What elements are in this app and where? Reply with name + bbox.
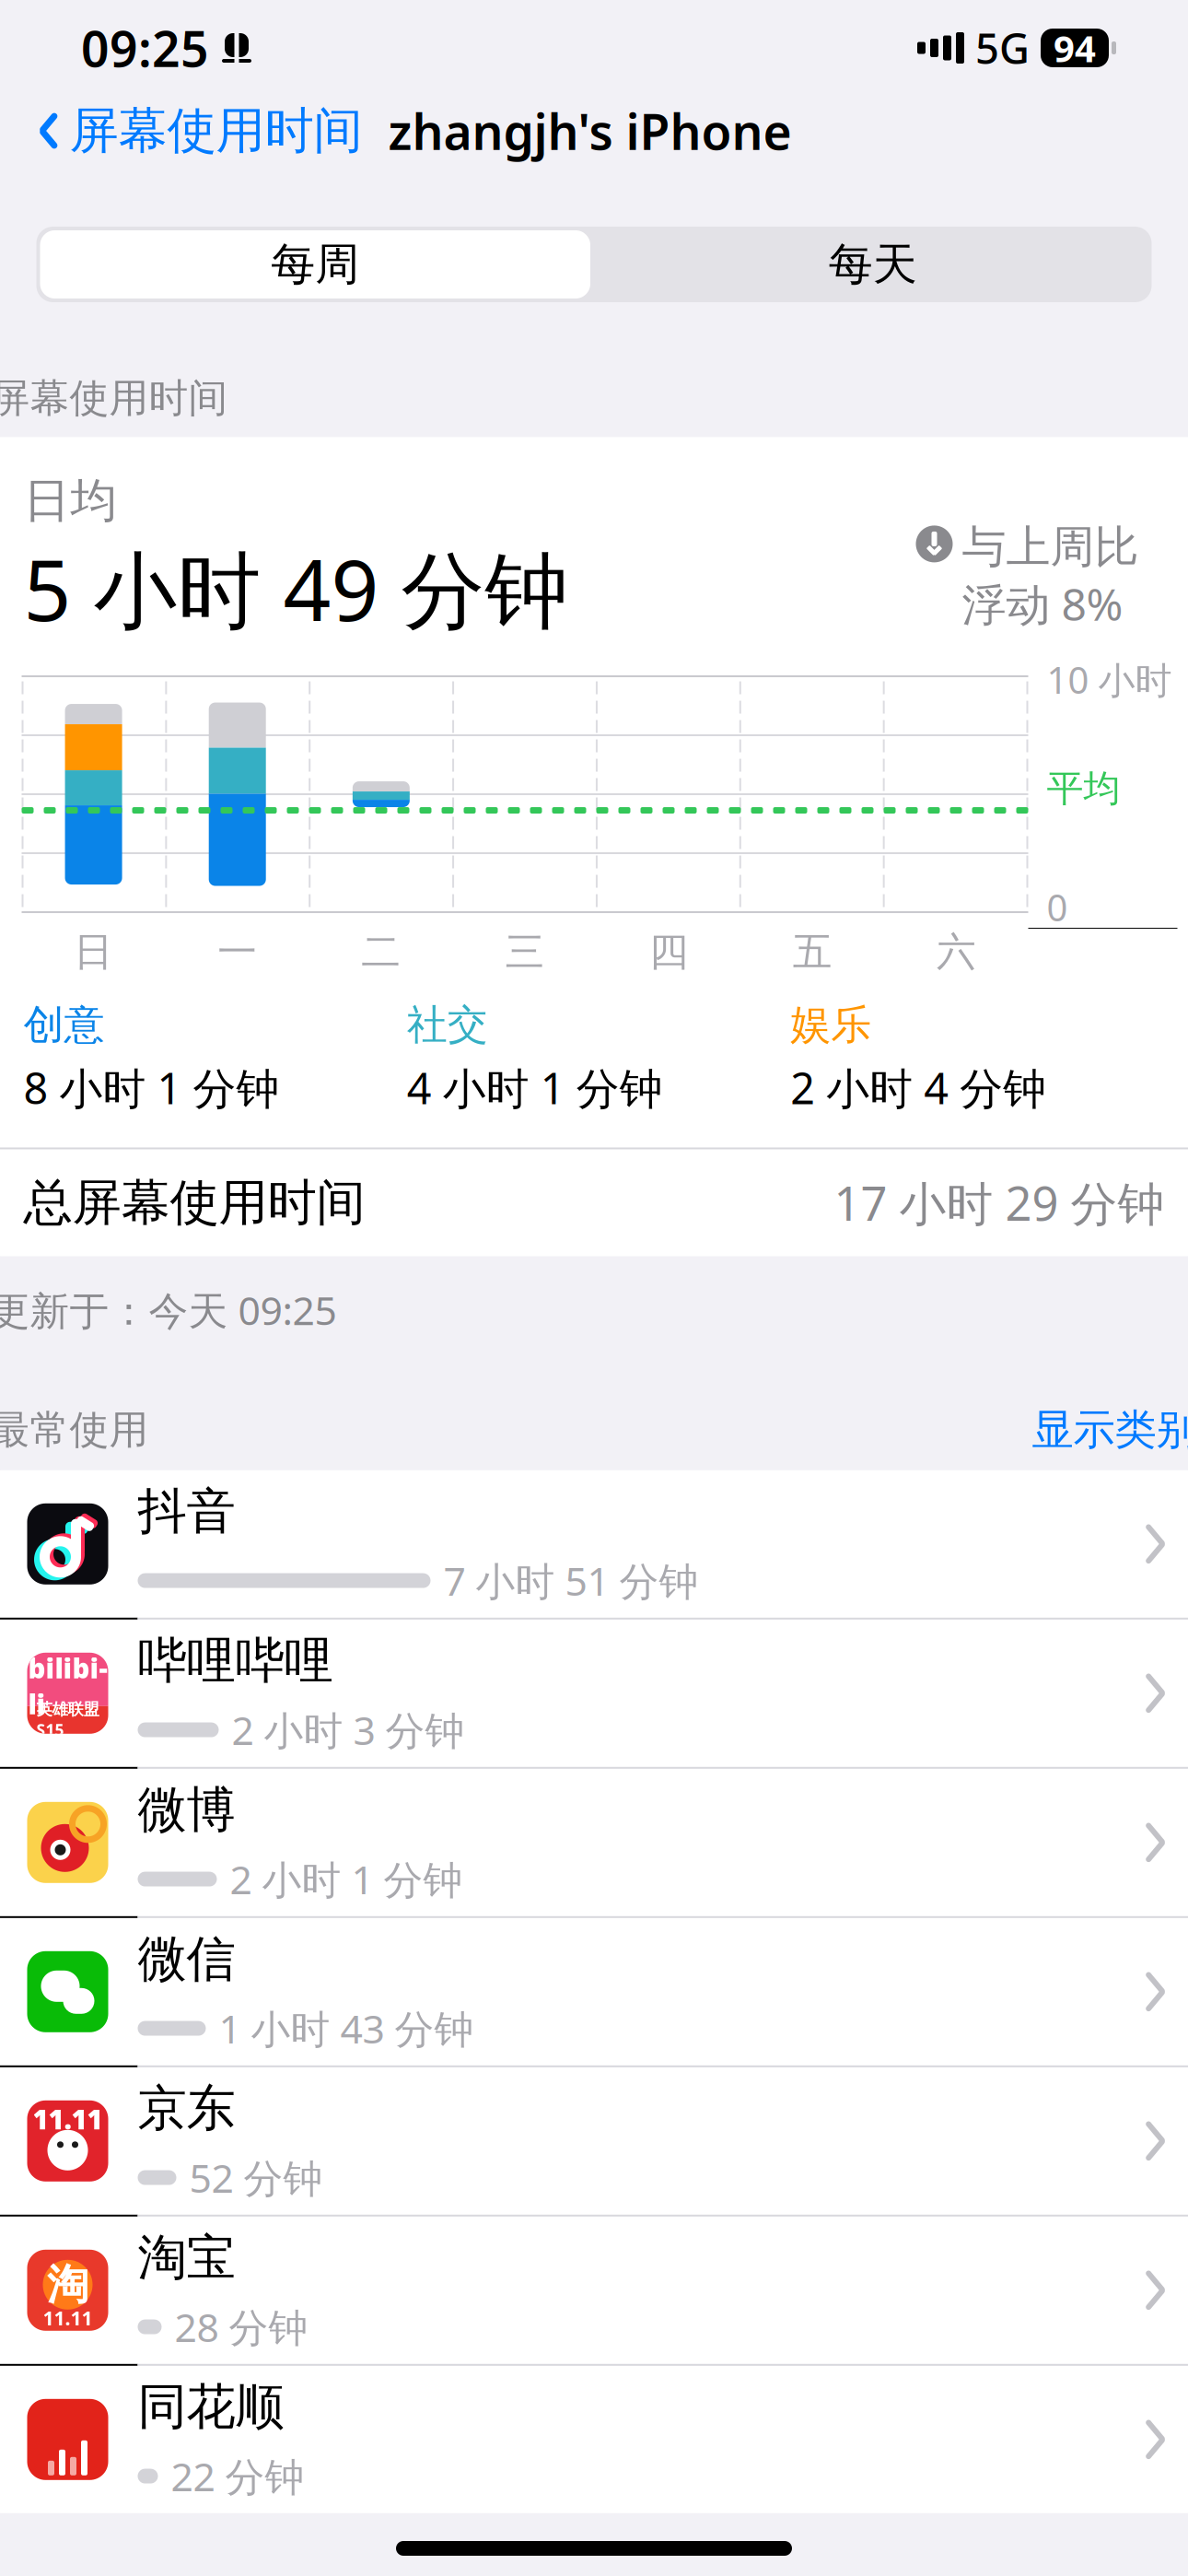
- staticText: 社交: [407, 1000, 488, 1050]
- staticText: 屏幕使用时间: [0, 374, 228, 422]
- button[interactable]: 英雄联盟S15: [0, 1619, 1188, 1769]
- button[interactable]: 11.11: [0, 2067, 1188, 2217]
- staticText: 0: [1047, 883, 1068, 931]
- button[interactable]: 总屏幕使用时间: [0, 1149, 1188, 1256]
- staticText: 六: [936, 928, 976, 976]
- staticText: 显示类别: [1032, 1404, 1188, 1455]
- staticText: 09:25: [81, 15, 209, 81]
- staticText: zhangjh's iPhone: [388, 98, 792, 163]
- staticText: 淘: [47, 2259, 88, 2310]
- staticText: 22 分钟: [171, 2450, 304, 2502]
- staticText: 与上周比浮动 8%: [962, 520, 1139, 633]
- staticText: 5 小时 49 分钟: [23, 533, 569, 644]
- staticText: 2 小时 3 分钟: [232, 1704, 465, 1756]
- staticText: 创意: [23, 1000, 105, 1050]
- staticText: 总屏幕使用时间: [23, 1173, 365, 1233]
- staticText: 抖音: [138, 1481, 235, 1542]
- staticText: 4 小时 1 分钟: [407, 1059, 663, 1116]
- staticText: 2 小时 1 分钟: [230, 1853, 463, 1905]
- staticText: 淘宝: [138, 2227, 235, 2288]
- staticText: 日均: [23, 472, 117, 529]
- staticText: 更新于：今天 09:25: [0, 1284, 337, 1336]
- staticText: 二: [361, 928, 401, 976]
- staticText: 三: [505, 928, 545, 976]
- staticText: 每天: [829, 237, 917, 292]
- staticText: 微博: [138, 1780, 235, 1840]
- staticText: 1 小时 43 分钟: [219, 2002, 474, 2054]
- button[interactable]: 每天: [594, 227, 1152, 302]
- staticText: 28 分钟: [175, 2301, 308, 2353]
- staticText: 5G: [975, 20, 1030, 76]
- button[interactable]: 屏幕使用时间: [33, 88, 368, 174]
- staticText: 一: [218, 928, 257, 976]
- button[interactable]: 淘: [0, 2217, 1188, 2366]
- button[interactable]: 显示类别: [1032, 1404, 1188, 1455]
- staticText: 京东: [138, 2078, 235, 2139]
- staticText: 11.11: [33, 2101, 103, 2137]
- staticText: 同花顺: [138, 2377, 284, 2437]
- staticText: 52 分钟: [189, 2151, 323, 2204]
- button[interactable]: 每周: [36, 227, 594, 302]
- staticText: 哔哩哔哩: [138, 1630, 333, 1691]
- staticText: bilibili: [28, 1650, 107, 1722]
- staticText: 日: [74, 928, 113, 976]
- staticText: 11.11: [43, 2305, 93, 2331]
- button[interactable]: 同花顺: [0, 2366, 1188, 2513]
- staticText: 最常使用: [0, 1406, 149, 1454]
- staticText: 四: [649, 928, 688, 976]
- staticText: 屏幕使用时间: [70, 101, 362, 161]
- staticText: 英雄联盟S15: [36, 1700, 99, 1740]
- staticText: 娱乐: [790, 1000, 871, 1050]
- staticText: 微信: [138, 1929, 235, 1989]
- staticText: 94: [1054, 23, 1096, 72]
- button[interactable]: 微博: [0, 1769, 1188, 1918]
- staticText: 2 小时 4 分钟: [790, 1059, 1046, 1116]
- button[interactable]: 微信: [0, 1918, 1188, 2067]
- staticText: 7 小时 51 分钟: [443, 1554, 699, 1607]
- staticText: 8 小时 1 分钟: [23, 1059, 280, 1116]
- staticText: 每周: [271, 237, 359, 292]
- staticText: 五: [793, 928, 832, 976]
- button[interactable]: 抖音: [0, 1470, 1188, 1619]
- staticText: 17 小时 29 分钟: [834, 1172, 1165, 1234]
- staticText: 平均: [1047, 766, 1120, 811]
- staticText: 10 小时: [1047, 655, 1172, 704]
